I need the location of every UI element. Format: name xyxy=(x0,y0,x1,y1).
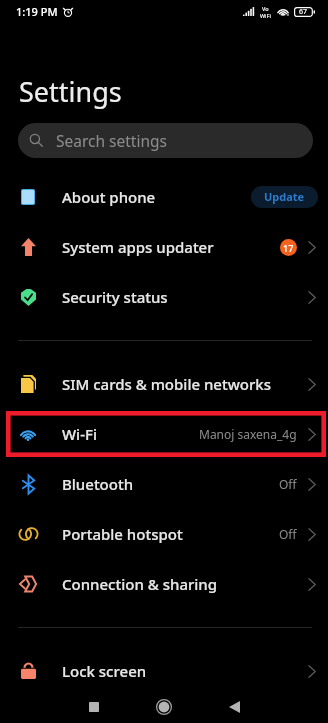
button[interactable]: Home xyxy=(129,696,199,718)
staticText: WiFi xyxy=(260,12,271,19)
staticText: About phone xyxy=(62,187,156,207)
staticText: Vo xyxy=(262,5,269,12)
button[interactable]: Update xyxy=(251,186,318,208)
button[interactable]: Wi-Fi xyxy=(0,409,328,459)
staticText: Wi-Fi xyxy=(62,424,97,444)
button[interactable]: Bluetooth xyxy=(0,459,328,509)
staticText: System apps updater xyxy=(62,237,214,257)
button[interactable]: Search settings xyxy=(18,123,313,158)
staticText: Bluetooth xyxy=(62,474,134,494)
button[interactable]: Portable hotspot xyxy=(0,509,328,559)
button[interactable]: Security status xyxy=(0,272,328,322)
staticText: 17 xyxy=(283,242,294,254)
button[interactable]: System apps updater xyxy=(0,222,328,272)
staticText: 1:19 PM xyxy=(16,4,58,19)
button[interactable]: Connection & sharing xyxy=(0,559,328,609)
staticText: SIM cards & mobile networks xyxy=(62,374,271,394)
button[interactable]: About phone xyxy=(0,172,328,222)
staticText: 67 xyxy=(299,7,308,17)
staticText: Portable hotspot xyxy=(62,524,183,544)
button[interactable]: SIM cards & mobile networks xyxy=(0,359,328,409)
staticText: Manoj saxena_4g xyxy=(199,426,297,442)
staticText: Update xyxy=(264,189,305,204)
button[interactable]: Lock screen xyxy=(0,646,328,696)
staticText: Settings xyxy=(19,73,122,110)
staticText: Off xyxy=(279,476,297,492)
staticText: Off xyxy=(279,526,297,542)
button[interactable]: Recent apps xyxy=(59,696,129,718)
staticText: Connection & sharing xyxy=(62,574,218,594)
staticText: Security status xyxy=(62,287,168,307)
staticText: Search settings xyxy=(56,130,167,151)
button[interactable]: Back xyxy=(199,696,269,718)
staticText: Lock screen xyxy=(62,661,147,681)
